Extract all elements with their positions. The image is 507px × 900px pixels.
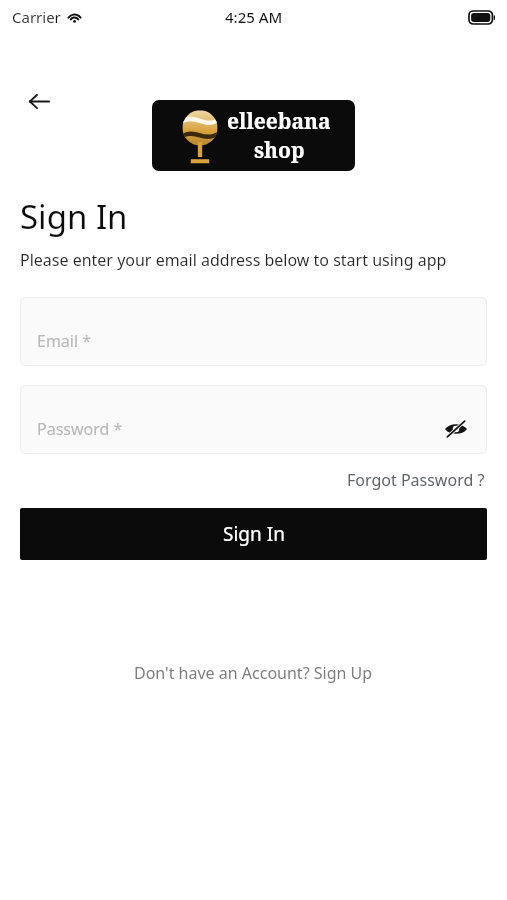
- button[interactable]: Show password: [439, 412, 473, 446]
- button[interactable]: elleebana shop logo: [152, 100, 355, 171]
- button[interactable]: Forgot Password ?: [345, 466, 487, 494]
- button[interactable]: Email *: [20, 297, 487, 366]
- staticText: Sign In: [223, 521, 285, 547]
- button[interactable]: Sign In: [20, 508, 487, 560]
- staticText: Don't have an Account? Sign Up: [134, 662, 373, 684]
- button[interactable]: Password *: [20, 385, 487, 454]
- button[interactable]: Don't have an Account? Sign Up: [128, 658, 379, 688]
- staticText: Carrier: [12, 7, 61, 27]
- staticText: shop: [254, 136, 305, 165]
- staticText: Password *: [37, 418, 123, 440]
- button[interactable]: Back: [18, 80, 60, 122]
- staticText: 4:25 AM: [225, 7, 283, 27]
- staticText: Email *: [37, 330, 92, 352]
- staticText: elleebana: [227, 107, 331, 136]
- staticText: Please enter your email address below to…: [20, 249, 447, 271]
- staticText: Sign In: [20, 194, 128, 239]
- staticText: Forgot Password ?: [347, 469, 485, 491]
